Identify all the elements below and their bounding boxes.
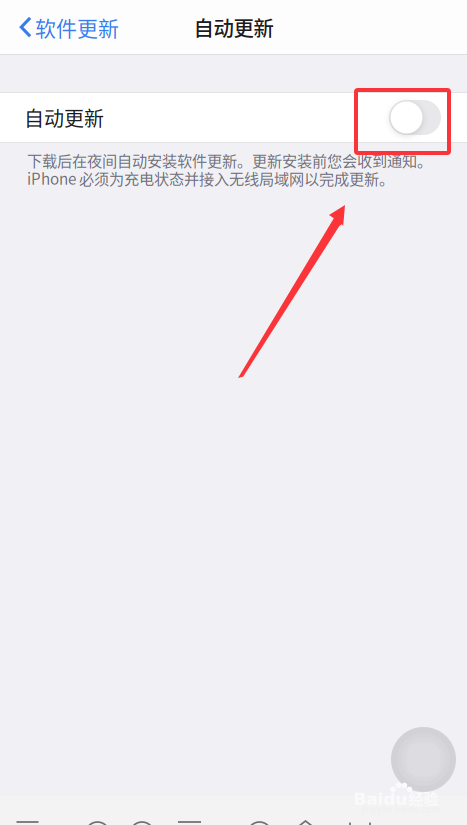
staticText: 经验 [408, 787, 438, 809]
staticText: iPhone 必须为充电状态并接入无线局域网以完成更新。 [27, 167, 394, 189]
staticText: 下载后在夜间自动安装软件更新。更新安装前您会收到通知。 [27, 149, 432, 171]
button[interactable]: 软件更新 [0, 0, 129, 54]
staticText: 自动更新 [24, 103, 104, 132]
staticText: 自动更新 [193, 12, 273, 42]
staticText: Baidu [353, 789, 407, 809]
button[interactable]: 自动更新 [389, 100, 441, 135]
staticText: 软件更新 [35, 12, 119, 42]
